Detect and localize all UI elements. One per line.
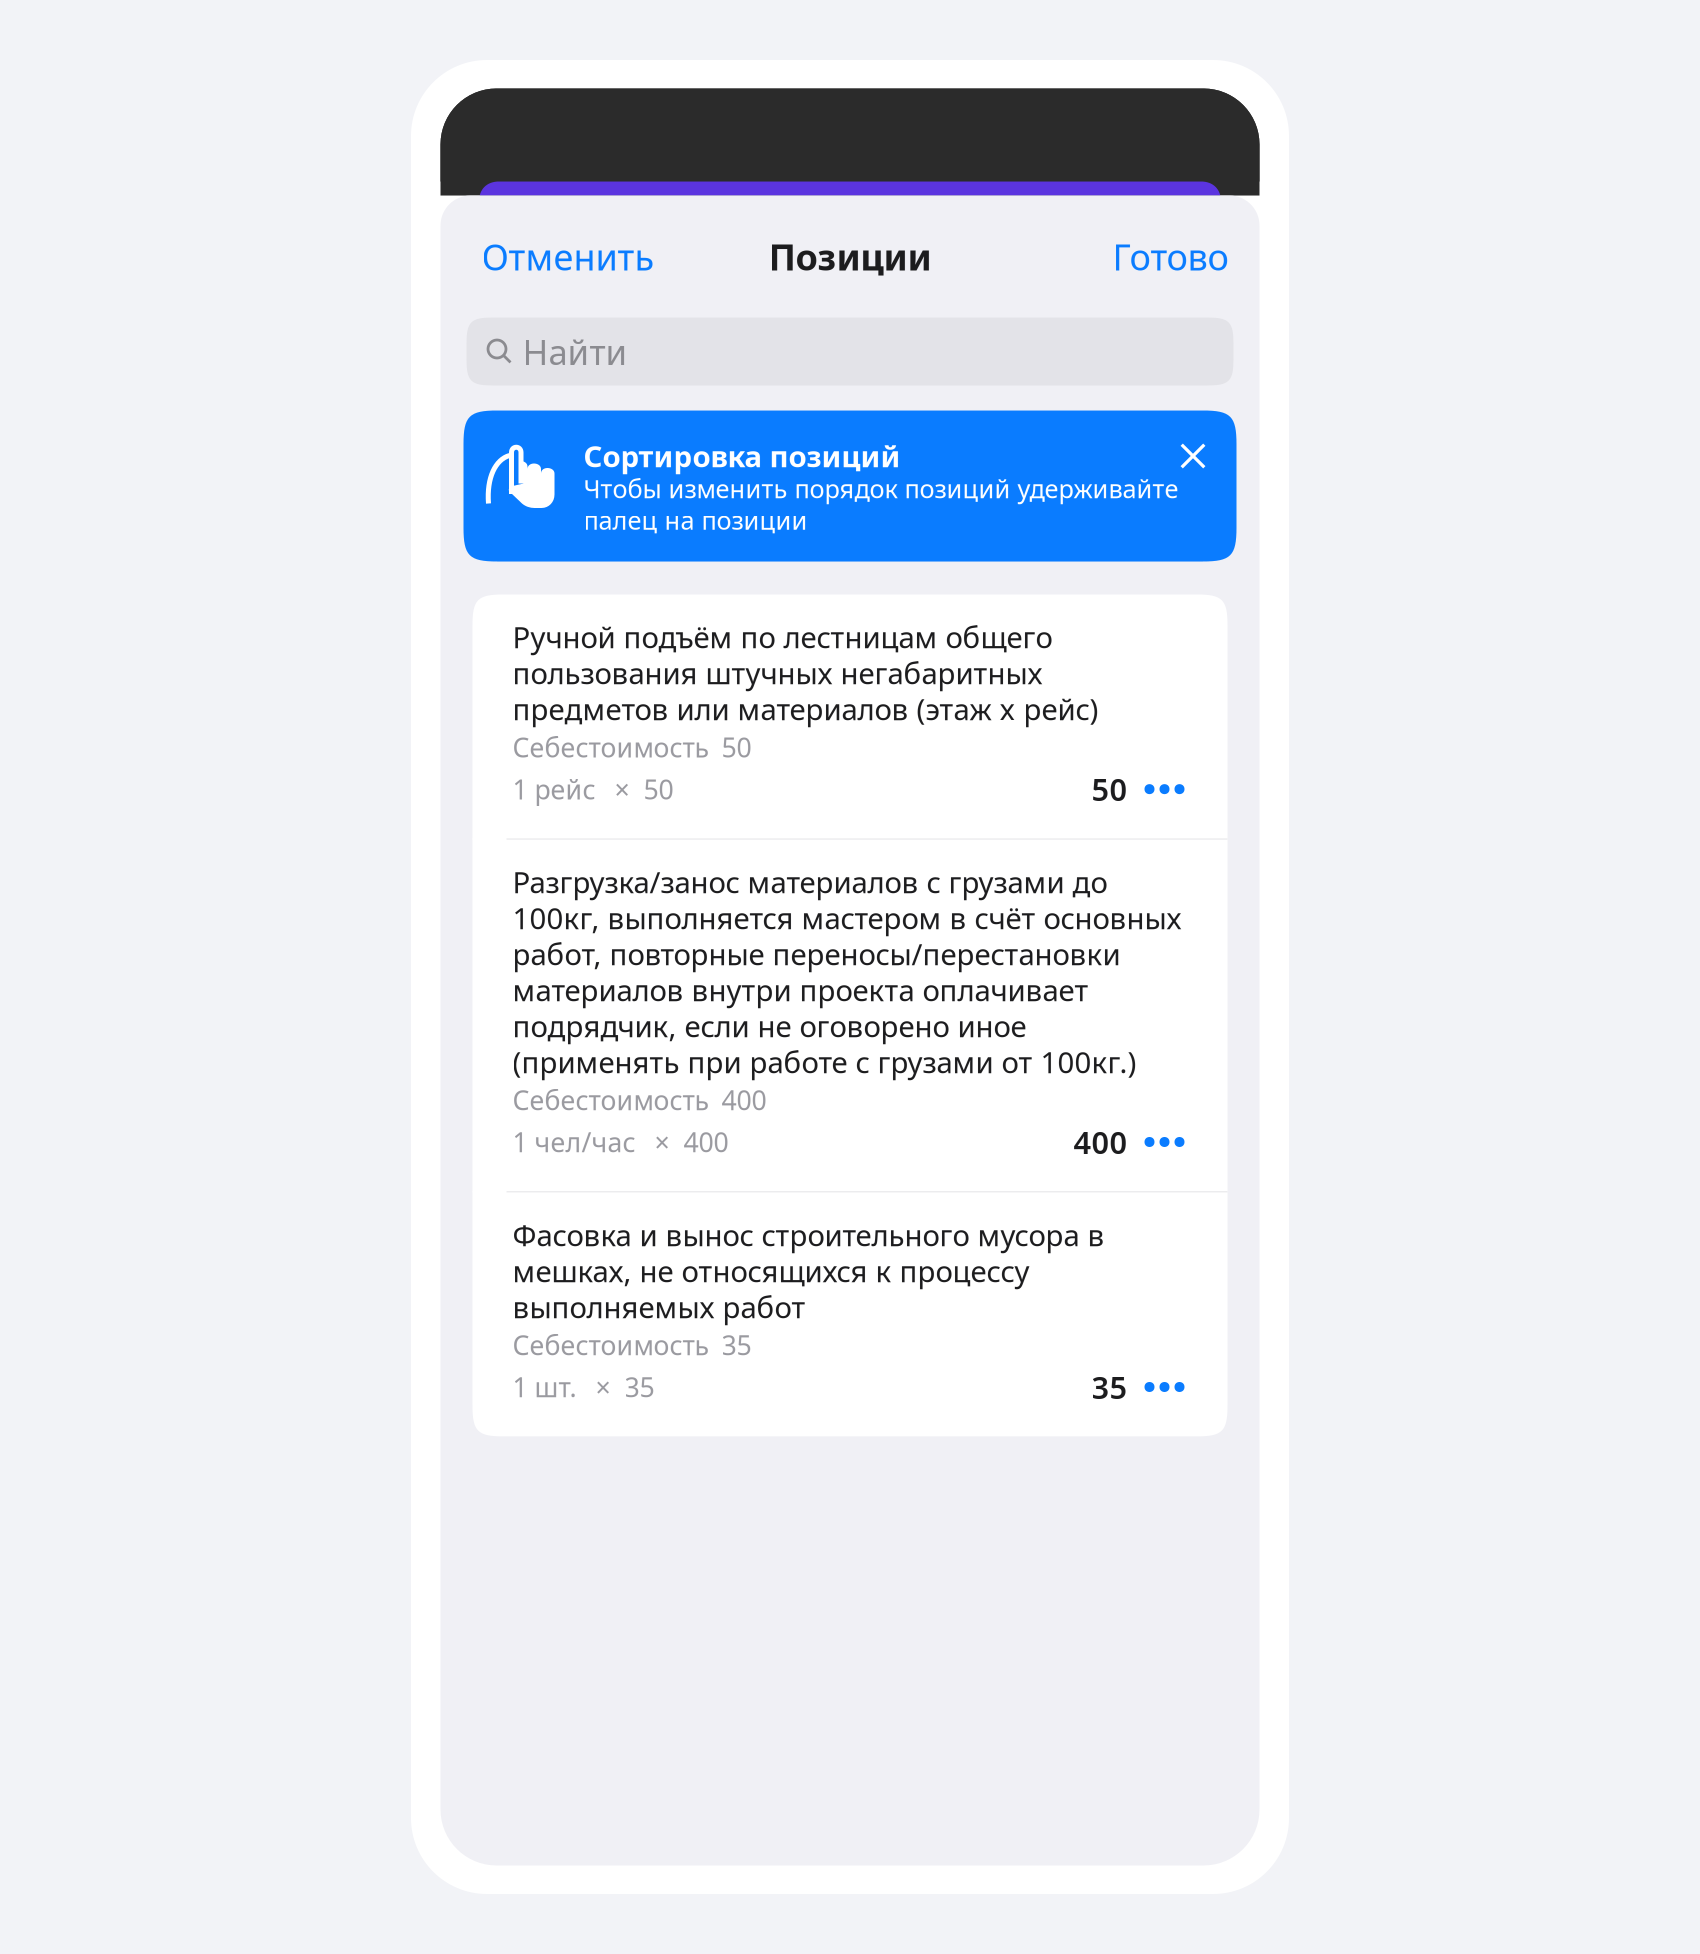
staticText: 50: [1091, 769, 1127, 809]
staticText: 50: [643, 771, 673, 807]
staticText: 35: [1091, 1367, 1127, 1407]
staticText: Себестоимость: [512, 1082, 709, 1118]
button[interactable]: Отменить: [440, 223, 668, 290]
staticText: Найти: [522, 328, 627, 374]
staticText: 50: [721, 729, 751, 765]
staticText: Сортировка позиций: [583, 436, 900, 475]
staticText: Отменить: [481, 233, 654, 280]
staticText: Ручной подъём по лестницам общего пользо…: [512, 617, 1098, 728]
staticText: Позиции: [768, 233, 931, 280]
staticText: ×: [595, 1369, 610, 1405]
staticText: Чтобы изменить порядок позиций удерживай…: [583, 471, 1178, 537]
staticText: Готово: [1112, 233, 1228, 280]
staticText: 400: [683, 1124, 728, 1160]
button[interactable]: Закрыть подсказку: [1159, 410, 1236, 489]
staticText: 35: [721, 1327, 751, 1363]
staticText: Фасовка и вынос строительного мусора в м…: [512, 1215, 1104, 1326]
staticText: Разгрузка/занос материалов с грузами до …: [512, 862, 1181, 1081]
button[interactable]: Готово: [1098, 223, 1259, 290]
staticText: Себестоимость: [512, 1327, 709, 1363]
staticText: 400: [1073, 1122, 1127, 1162]
button[interactable]: Ручной подъём по лестницам общего пользо…: [472, 594, 1227, 838]
staticText: 400: [721, 1082, 766, 1118]
staticText: 1 шт.: [512, 1369, 576, 1405]
button[interactable]: Фасовка и вынос строительного мусора в м…: [472, 1192, 1227, 1436]
staticText: 1 чел/час: [512, 1124, 635, 1160]
staticText: ×: [614, 771, 629, 807]
button[interactable]: Разгрузка/занос материалов с грузами до …: [472, 839, 1227, 1191]
staticText: Себестоимость: [512, 729, 709, 765]
staticText: ×: [654, 1124, 669, 1160]
staticText: 1 рейс: [512, 771, 595, 807]
staticText: 35: [624, 1369, 654, 1405]
